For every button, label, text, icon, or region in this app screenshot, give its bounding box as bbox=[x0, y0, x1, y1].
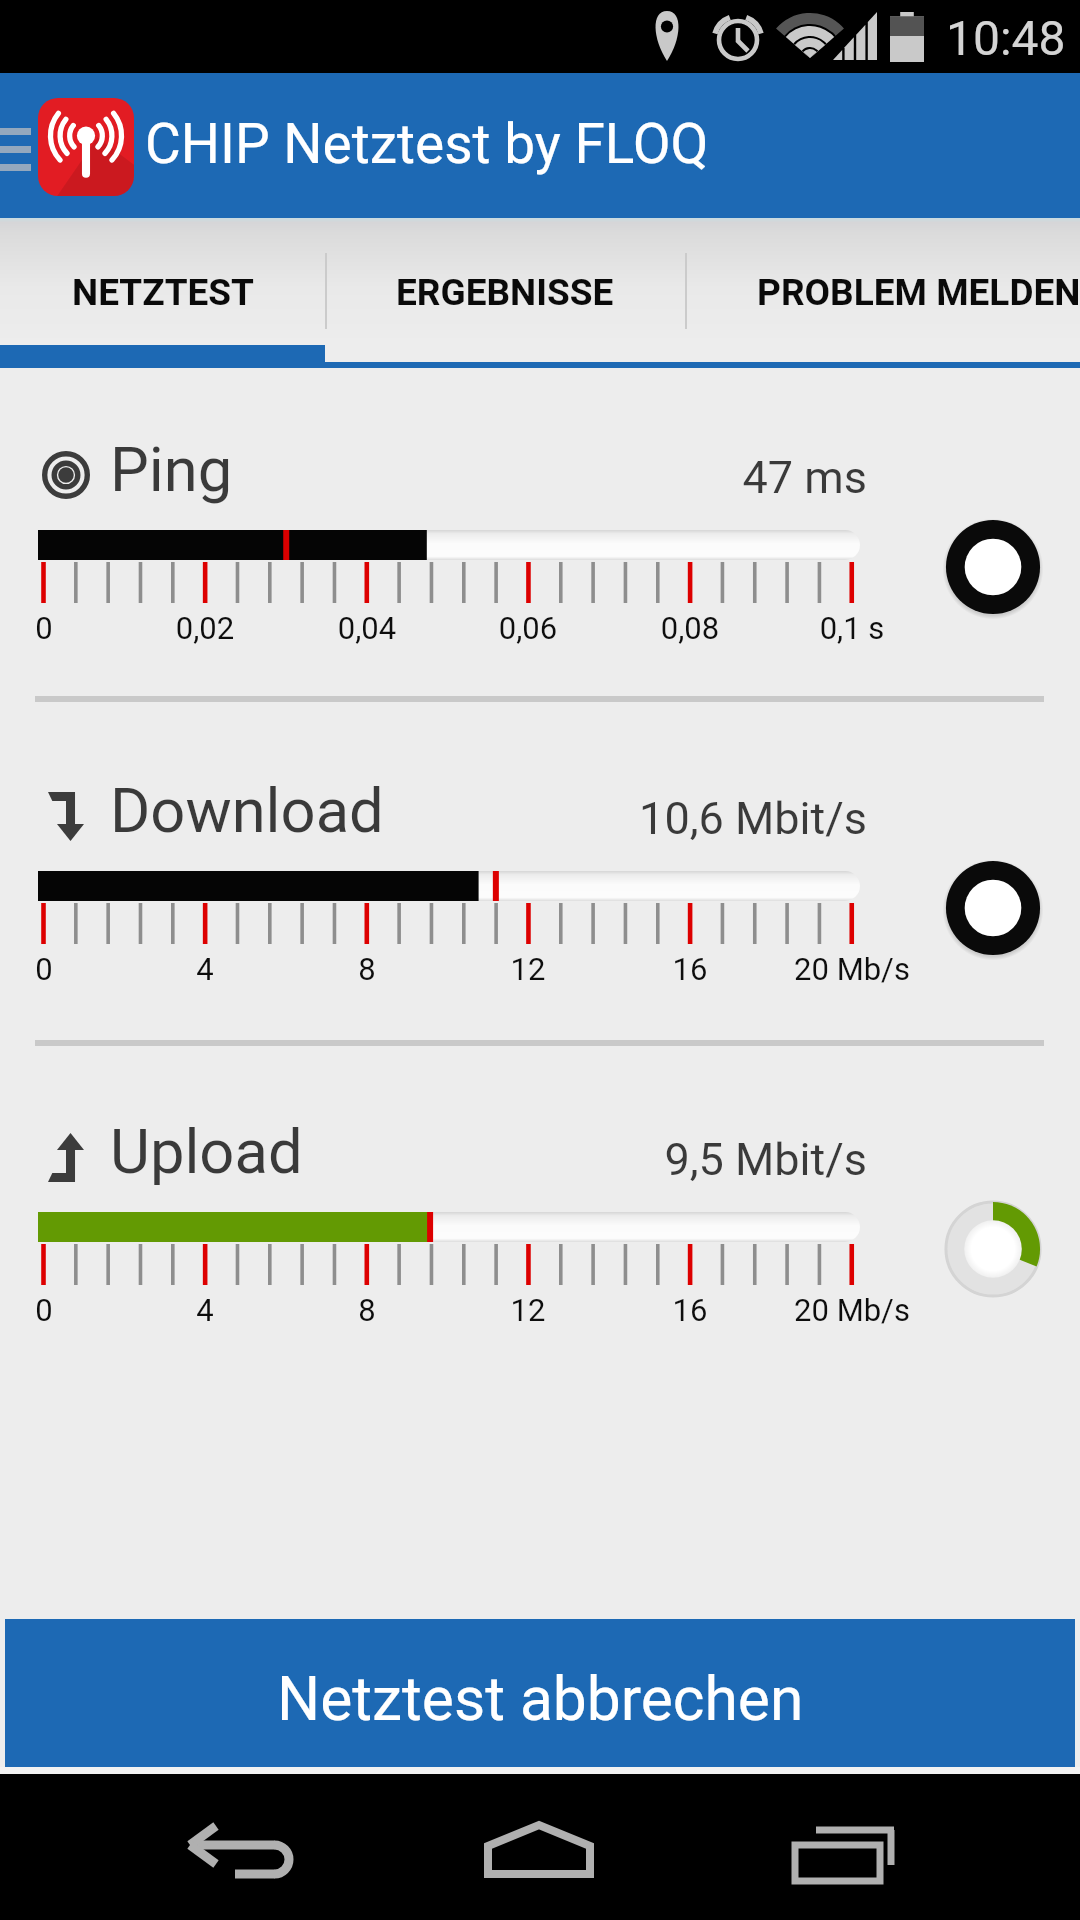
staticText: Ping bbox=[110, 434, 233, 506]
staticText: 8 bbox=[257, 951, 477, 987]
staticText: Netztest abbrechen bbox=[277, 1664, 804, 1735]
other: Wifi bbox=[765, 13, 855, 59]
staticText: 0 bbox=[0, 610, 154, 646]
staticText: 9,5 Mbit/s bbox=[467, 1133, 867, 1186]
button[interactable]: NETZTEST bbox=[0, 218, 325, 345]
staticText: 0 bbox=[0, 1292, 154, 1328]
staticText: 0,02 bbox=[95, 610, 315, 646]
staticText: CHIP Netztest by FLOQ bbox=[145, 112, 709, 176]
staticText: 4 bbox=[95, 951, 315, 987]
button[interactable]: PROBLEM MELDEN bbox=[685, 218, 1080, 345]
button[interactable]: Netztest abbrechen bbox=[5, 1619, 1075, 1767]
other: Battery bbox=[890, 12, 924, 62]
staticText: 8 bbox=[257, 1292, 477, 1328]
button[interactable]: Back bbox=[170, 1819, 310, 1889]
staticText: Download bbox=[110, 775, 384, 847]
staticText: 0,06 bbox=[418, 610, 638, 646]
staticText: 12 bbox=[418, 951, 638, 987]
staticText: 20 Mb/s bbox=[742, 1292, 962, 1328]
staticText: 0,04 bbox=[257, 610, 477, 646]
staticText: 0 bbox=[0, 951, 154, 987]
staticText: Upload bbox=[110, 1116, 303, 1188]
staticText: 16 bbox=[580, 951, 800, 987]
staticText: 47 ms bbox=[467, 451, 867, 504]
staticText: 12 bbox=[418, 1292, 638, 1328]
button[interactable]: Recents bbox=[782, 1817, 912, 1887]
staticText: ERGEBNISSE bbox=[396, 271, 614, 314]
staticText: 10:48 bbox=[946, 10, 1066, 66]
other: Location bbox=[650, 11, 684, 61]
staticText: 10,6 Mbit/s bbox=[467, 792, 867, 845]
staticText: 0,1 s bbox=[742, 610, 962, 646]
button[interactable]: Home bbox=[474, 1815, 604, 1885]
staticText: NETZTEST bbox=[72, 271, 254, 314]
button[interactable]: ERGEBNISSE bbox=[325, 218, 685, 345]
staticText: 0,08 bbox=[580, 610, 800, 646]
other: Alarm bbox=[708, 10, 768, 66]
other: Signal bbox=[833, 12, 877, 60]
staticText: 16 bbox=[580, 1292, 800, 1328]
staticText: PROBLEM MELDEN bbox=[757, 271, 1080, 314]
staticText: 4 bbox=[95, 1292, 315, 1328]
staticText: 20 Mb/s bbox=[742, 951, 962, 987]
